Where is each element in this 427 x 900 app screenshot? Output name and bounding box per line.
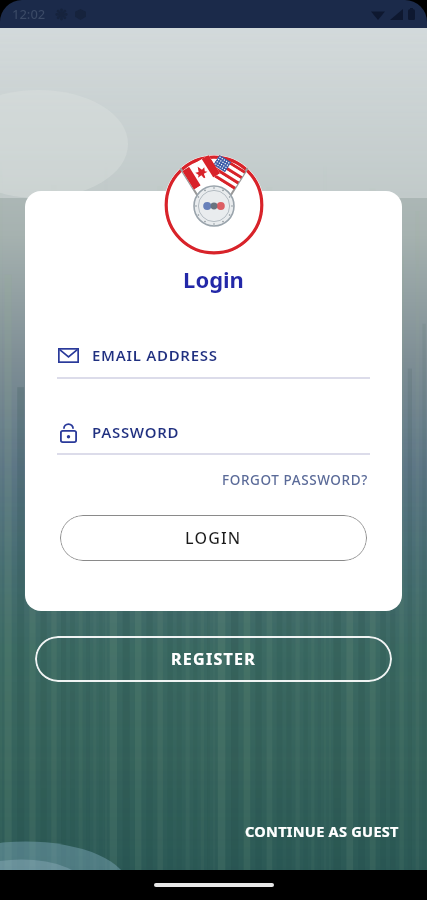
button[interactable]: PASSWORD — [57, 421, 370, 443]
other: Logo — [164, 155, 264, 255]
button[interactable]: CONTINUE AS GUEST — [239, 816, 405, 846]
staticText: 12:02 — [12, 5, 46, 23]
button[interactable]: LOGIN — [60, 515, 367, 561]
button[interactable]: EMAIL ADDRESS — [57, 344, 370, 366]
staticText: Login — [25, 264, 402, 294]
staticText: FORGOT PASSWORD? — [222, 471, 368, 489]
staticText: LOGIN — [185, 527, 242, 549]
button[interactable]: FORGOT PASSWORD? — [220, 468, 370, 492]
staticText: PASSWORD — [92, 422, 180, 442]
button[interactable]: REGISTER — [35, 636, 392, 682]
staticText: CONTINUE AS GUEST — [245, 821, 399, 841]
staticText: REGISTER — [171, 648, 257, 670]
staticText: EMAIL ADDRESS — [92, 345, 218, 365]
